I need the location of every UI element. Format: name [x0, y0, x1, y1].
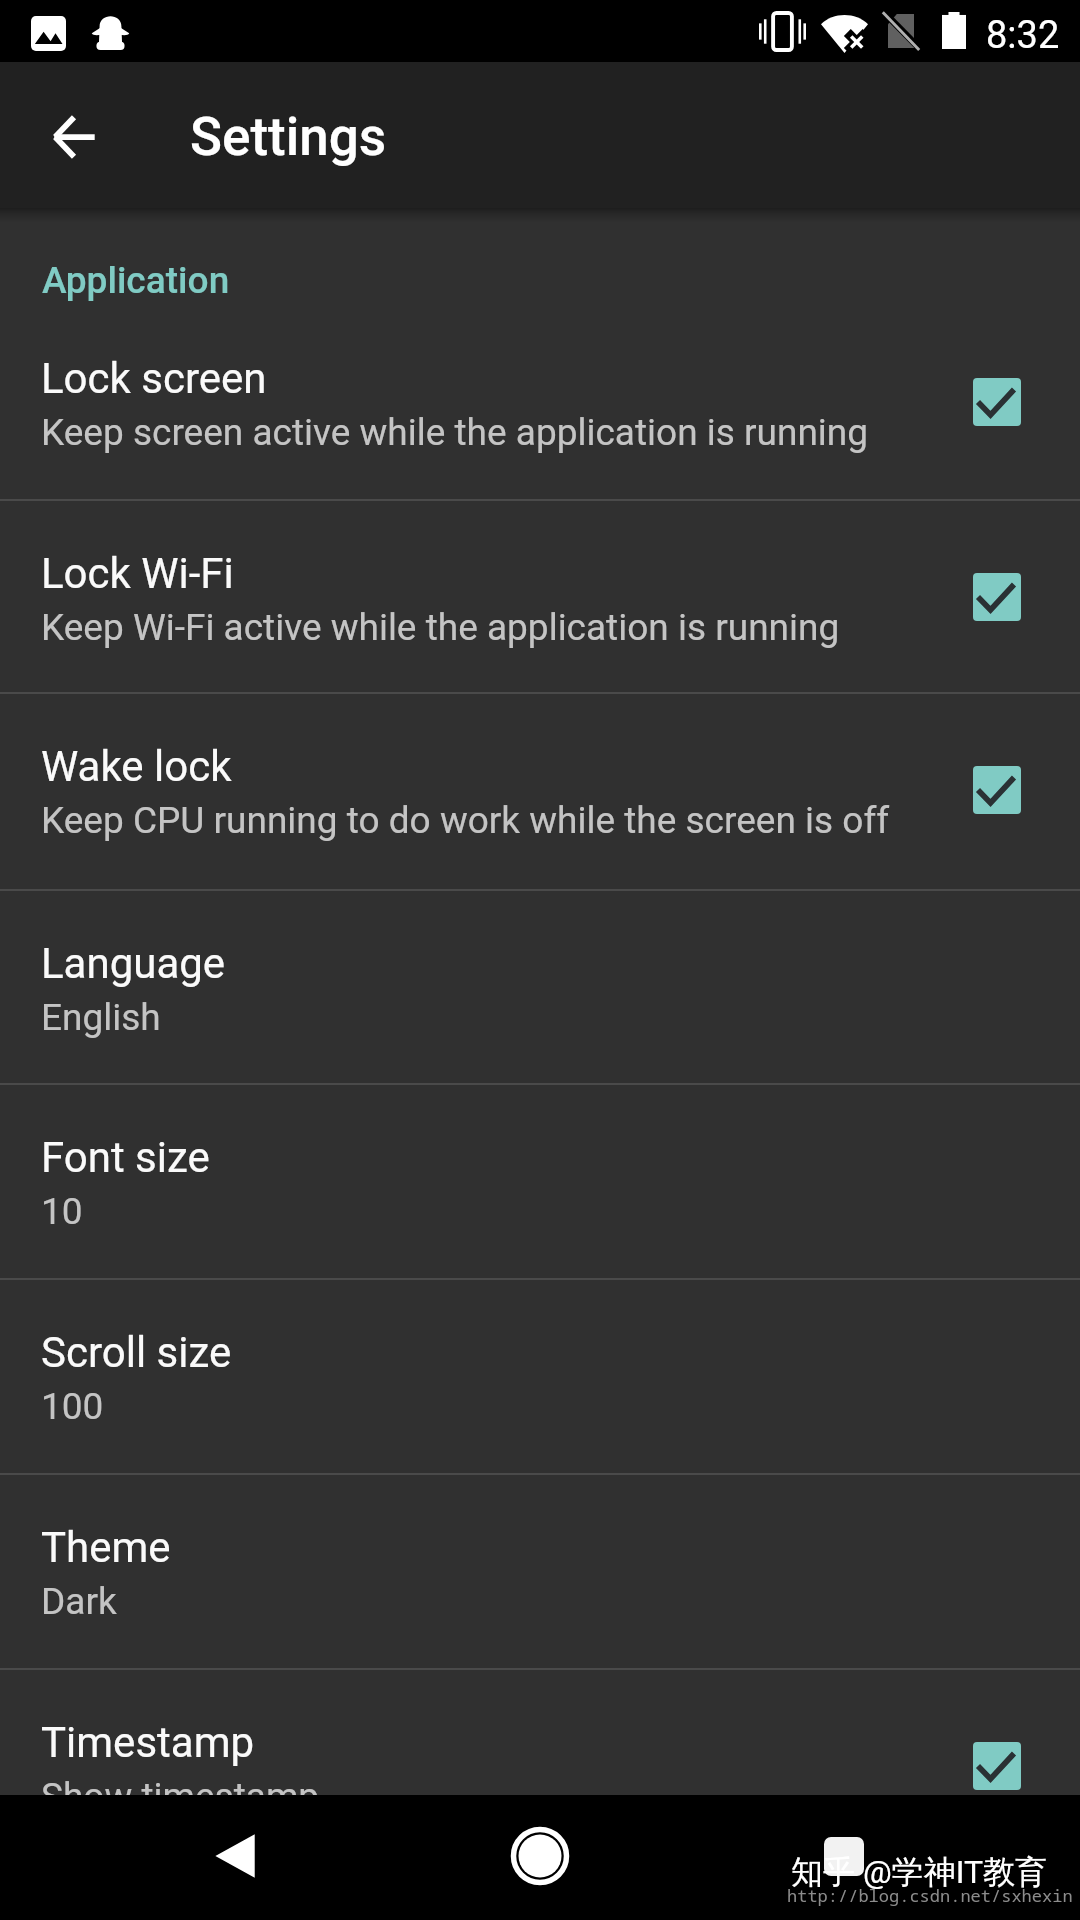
staticText: Dark — [41, 1580, 117, 1623]
button[interactable]: Theme — [0, 1475, 1080, 1668]
button[interactable]: Lock screen — [0, 306, 1080, 499]
button[interactable]: Font size — [0, 1085, 1080, 1278]
staticText: http://blog.csdn.net/sxhexin — [787, 1884, 1073, 1907]
staticText: Application — [42, 259, 230, 302]
button[interactable]: Back — [188, 1808, 284, 1904]
staticText: Lock screen — [41, 354, 267, 403]
staticText: 100 — [41, 1385, 104, 1428]
staticText: Keep screen active while the application… — [41, 411, 869, 454]
button[interactable]: Wake lock — [0, 694, 1080, 889]
button[interactable]: Toggle setting — [973, 766, 1021, 814]
staticText: Settings — [190, 106, 387, 168]
button[interactable]: Toggle setting — [973, 573, 1021, 621]
staticText: 8:32 — [986, 13, 1060, 58]
staticText: Language — [41, 939, 226, 988]
staticText: Theme — [41, 1523, 171, 1572]
button[interactable]: Language — [0, 891, 1080, 1083]
staticText: Keep Wi-Fi active while the application … — [41, 606, 840, 649]
staticText: 10 — [41, 1190, 83, 1233]
staticText: Scroll size — [41, 1328, 232, 1377]
staticText: Wake lock — [41, 742, 232, 791]
button[interactable]: Toggle setting — [973, 1742, 1021, 1790]
button[interactable]: Timestamp — [0, 1670, 1080, 1799]
staticText: Keep CPU running to do work while the sc… — [41, 799, 890, 842]
staticText: Show timestamp — [41, 1775, 320, 1818]
button[interactable]: Home — [492, 1808, 588, 1904]
staticText: 知乎 @学神IT教育 — [791, 1852, 1048, 1892]
staticText: Lock Wi-Fi — [41, 549, 234, 598]
staticText: English — [41, 996, 161, 1039]
button[interactable]: Lock Wi-Fi — [0, 501, 1080, 692]
staticText: Font size — [41, 1133, 210, 1182]
staticText: Timestamp — [41, 1718, 255, 1767]
button[interactable]: Toggle setting — [973, 378, 1021, 426]
button[interactable]: Scroll size — [0, 1280, 1080, 1473]
button[interactable]: Navigate up — [28, 91, 120, 183]
